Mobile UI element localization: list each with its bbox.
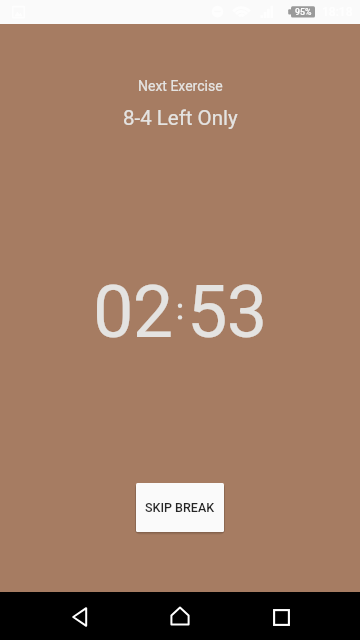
button[interactable]: Home	[156, 592, 204, 640]
button[interactable]: Back	[56, 592, 104, 640]
staticText: SKIP BREAK	[145, 500, 215, 515]
staticText: 95%	[295, 7, 312, 17]
staticText: Next Exercise	[138, 78, 223, 94]
button[interactable]: Recent apps	[257, 592, 305, 640]
staticText: 02	[93, 270, 173, 354]
button[interactable]: SKIP BREAK	[136, 483, 224, 532]
staticText: 8-4 Left Only	[123, 106, 238, 130]
staticText: 53	[187, 270, 267, 354]
